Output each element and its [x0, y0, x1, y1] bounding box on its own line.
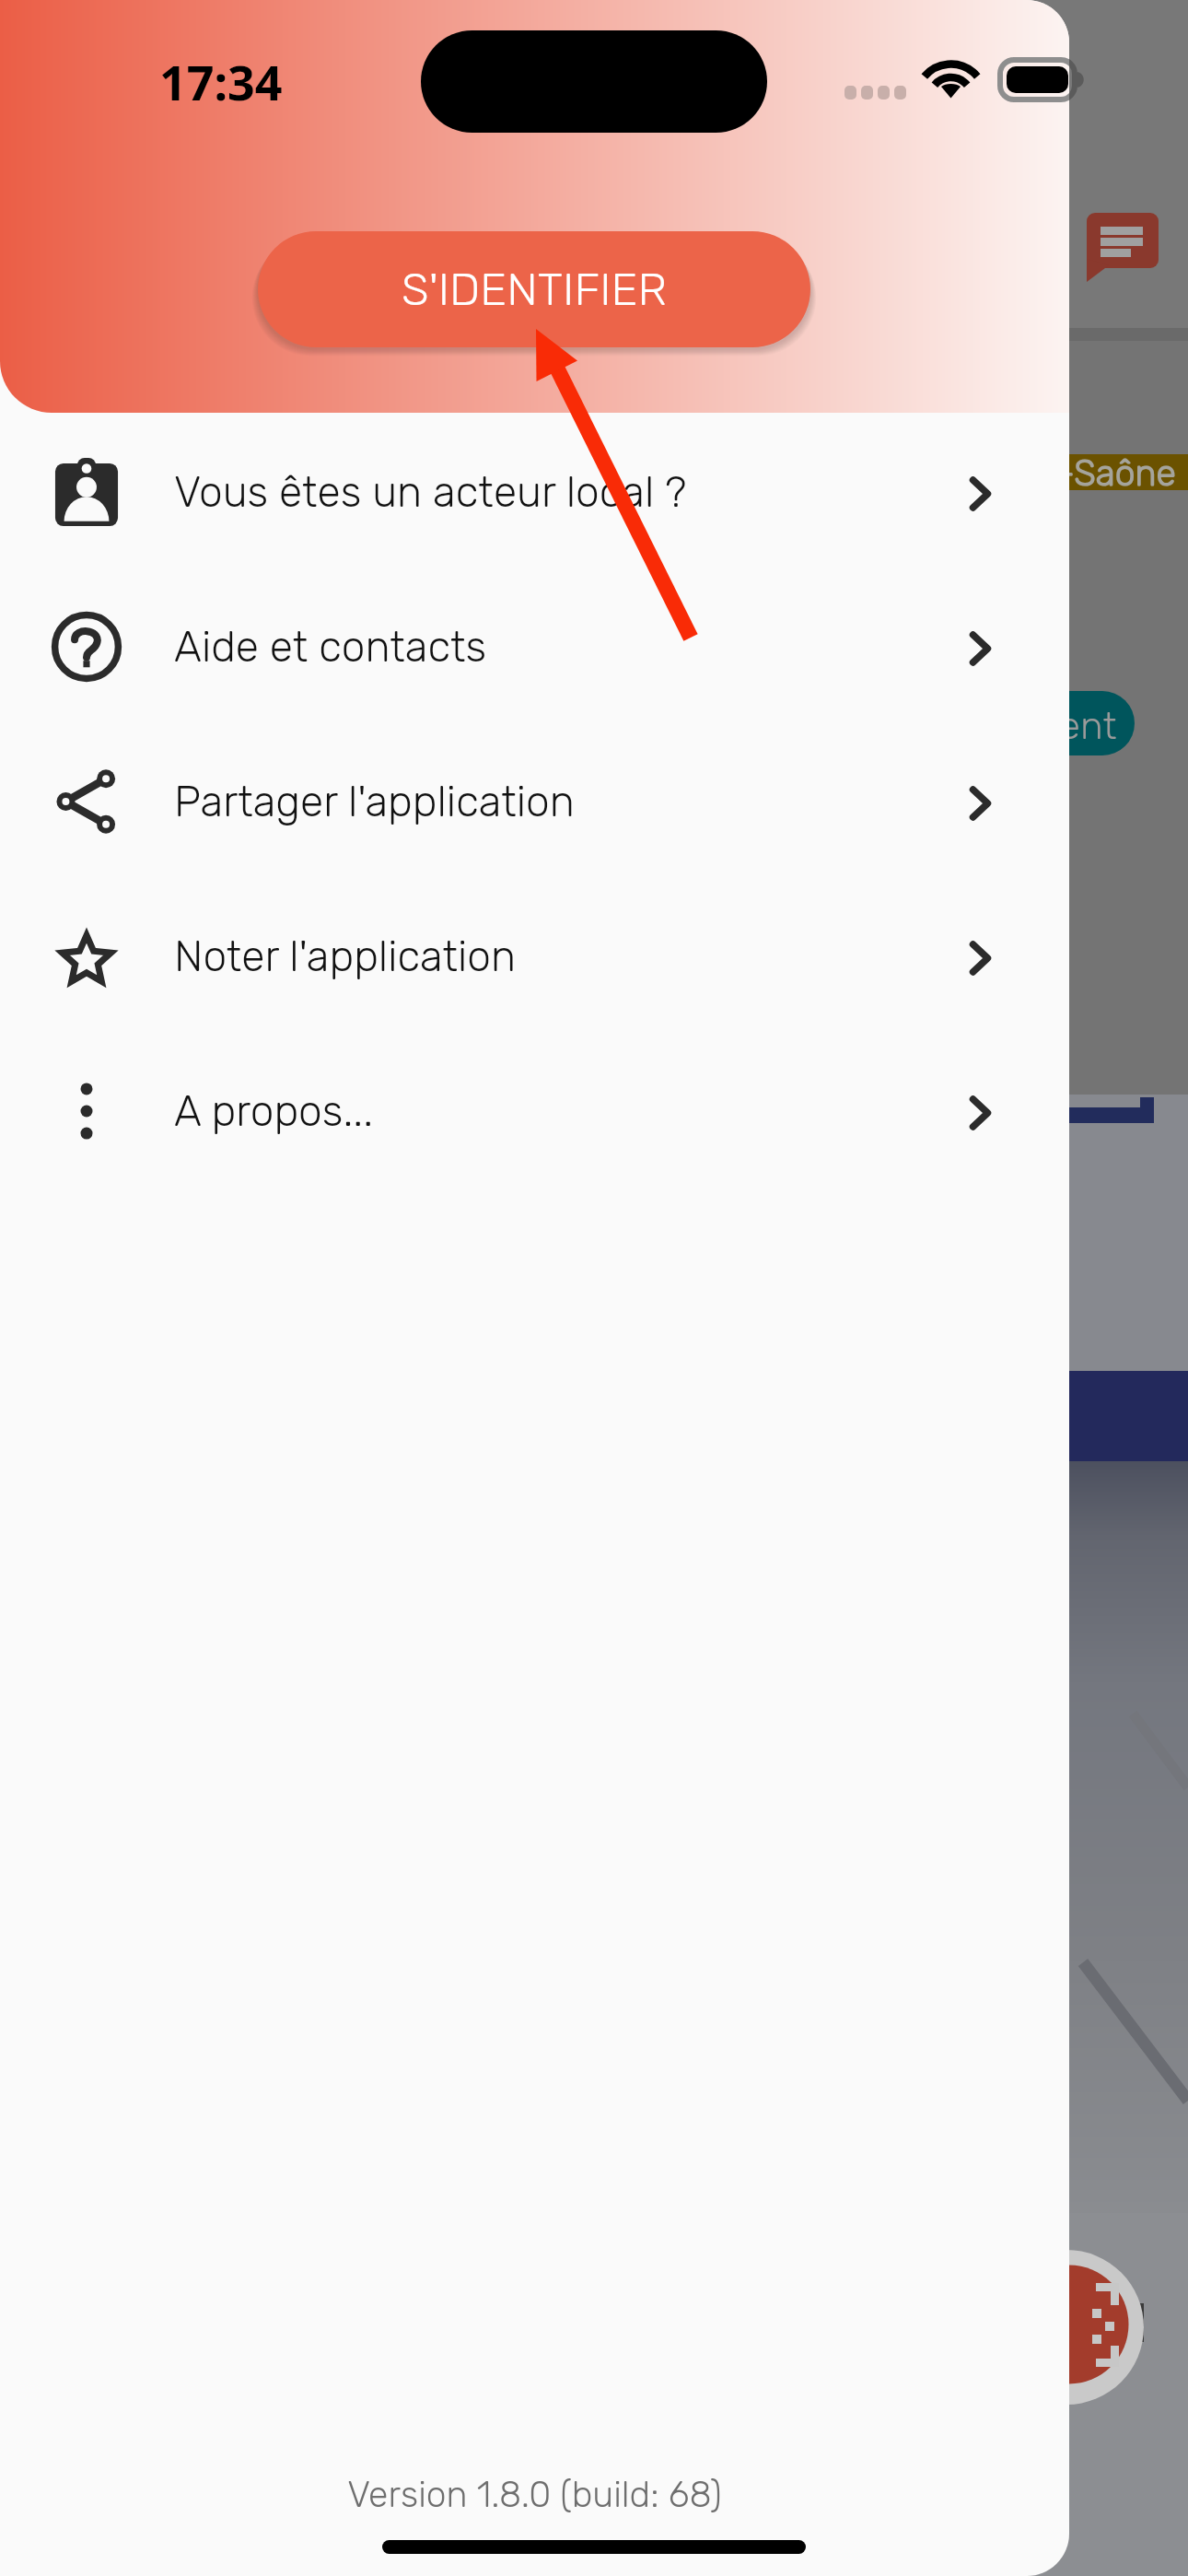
button[interactable]: A propos...: [0, 1034, 1069, 1188]
button[interactable]: Noter l'application: [0, 879, 1069, 1034]
staticText: Vous êtes un acteur local ?: [174, 467, 891, 518]
staticText: A propos...: [174, 1086, 891, 1137]
staticText: -Saône: [1057, 452, 1176, 495]
staticText: Noter l'application: [174, 931, 891, 982]
staticText: S'IDENTIFIER: [402, 263, 667, 316]
staticText: 17:34: [159, 49, 283, 114]
staticText: ent: [1059, 703, 1117, 749]
button[interactable]: Partager l'application: [0, 724, 1069, 879]
button[interactable]: S'IDENTIFIER: [258, 231, 810, 347]
staticText: Aide et contacts: [174, 622, 891, 673]
staticText: Partager l'application: [174, 777, 891, 827]
staticText: Version 1.8.0 (build: 68): [0, 2474, 1069, 2516]
button[interactable]: Vous êtes un acteur local ?: [0, 415, 1069, 569]
button[interactable]: Aide et contacts: [0, 569, 1069, 724]
